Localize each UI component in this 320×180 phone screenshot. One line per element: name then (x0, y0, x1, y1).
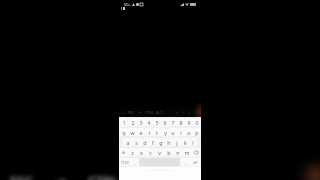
staticText: 2 (131, 119, 135, 126)
button[interactable]: → (193, 108, 199, 117)
staticText: — (121, 110, 125, 115)
staticText: CTRL (145, 110, 154, 115)
staticText: ← (176, 111, 180, 115)
button[interactable]: k (181, 138, 189, 146)
button[interactable]: f (149, 138, 157, 146)
staticText: ALT (156, 110, 163, 115)
button[interactable]: m (182, 148, 191, 156)
staticText: 8 (179, 119, 183, 126)
staticText: b (167, 149, 171, 156)
button[interactable]: 4 (145, 118, 153, 126)
staticText: 6 (163, 119, 167, 126)
staticText: f (152, 139, 154, 146)
button[interactable]: v (155, 148, 164, 156)
staticText: ?123 (121, 160, 129, 165)
button[interactable]: h (165, 138, 173, 146)
button[interactable]: CTRL (144, 108, 155, 117)
button[interactable]: z (128, 148, 137, 156)
button[interactable]: w (128, 128, 137, 136)
staticText: j (176, 139, 178, 146)
staticText: ↑ (182, 111, 186, 115)
staticText: ⇥ (138, 111, 142, 115)
button[interactable]: , (130, 158, 139, 166)
staticText: , (134, 159, 136, 166)
button[interactable]: 6 (161, 118, 169, 126)
button[interactable]: ← (175, 108, 181, 117)
staticText: a (126, 139, 130, 146)
staticText: 9 (187, 119, 191, 126)
staticText: o (187, 129, 191, 136)
staticText: 5 (155, 119, 159, 126)
button[interactable]: u (169, 128, 177, 136)
button[interactable]: ↓ (187, 108, 193, 117)
staticText: m (184, 149, 190, 156)
button[interactable]: 2 (128, 118, 137, 126)
staticText: CTRL (88, 172, 119, 180)
button[interactable]: Enter (189, 158, 201, 166)
button[interactable]: Backspace (191, 148, 201, 156)
button[interactable]: x (137, 148, 146, 156)
staticText: e (139, 129, 143, 136)
staticText: → (194, 111, 198, 115)
button[interactable]: b (164, 148, 173, 156)
button[interactable]: 0 (193, 118, 201, 126)
button[interactable]: t (153, 128, 161, 136)
button[interactable]: . (180, 158, 189, 166)
staticText: x (140, 149, 143, 156)
button[interactable]: ALT (155, 108, 164, 117)
staticText: ESC (128, 110, 135, 115)
button[interactable]: a (123, 138, 132, 146)
button[interactable]: o (185, 128, 193, 136)
button[interactable]: Shift (119, 148, 128, 156)
button[interactable]: ⇥ (136, 108, 144, 117)
staticText: 50+ (124, 2, 131, 7)
staticText: ↓ (188, 111, 192, 115)
staticText: k (184, 139, 187, 146)
staticText: . (184, 159, 186, 166)
button[interactable]: s (132, 138, 141, 146)
button[interactable]: c (146, 148, 155, 156)
button[interactable]: 5 (153, 118, 161, 126)
button[interactable]: ?123 (119, 158, 130, 166)
button[interactable]: r (145, 128, 153, 136)
button[interactable]: ↑ (181, 108, 187, 117)
button[interactable]: l (189, 138, 197, 146)
staticText: 7 (171, 119, 175, 126)
staticText: ⇥ (55, 174, 66, 180)
button[interactable]: 7 (169, 118, 177, 126)
staticText: 3 (139, 119, 143, 126)
staticText: z (131, 149, 134, 156)
button[interactable]: 9 (185, 118, 193, 126)
staticText: c (149, 149, 152, 156)
button[interactable]: g (157, 138, 165, 146)
staticText: 4 (147, 119, 151, 126)
button[interactable]: 1 (119, 118, 128, 126)
button[interactable]: y (161, 128, 169, 136)
staticText: g (159, 139, 163, 146)
button[interactable]: n (173, 148, 182, 156)
staticText: 0 (195, 119, 199, 126)
button[interactable]: — (120, 108, 126, 117)
button[interactable]: j (173, 138, 181, 146)
button[interactable]: i (177, 128, 185, 136)
button[interactable]: q (119, 128, 128, 136)
staticText: h (167, 139, 171, 146)
button[interactable]: 3 (137, 118, 145, 126)
staticText: q (122, 129, 126, 136)
staticText: t (156, 129, 158, 136)
staticText: 1 (122, 119, 126, 126)
button[interactable]: d (141, 138, 149, 146)
button[interactable]: ESC (126, 108, 136, 117)
button[interactable]: e (137, 128, 145, 136)
button[interactable]: 8 (177, 118, 185, 126)
button[interactable]: p (193, 128, 201, 136)
staticText: u (171, 129, 175, 136)
staticText: s (135, 139, 138, 146)
staticText: v (158, 149, 161, 156)
staticText: i (180, 129, 182, 136)
staticText: n (176, 149, 180, 156)
staticText: d (143, 139, 147, 146)
staticText: r (148, 129, 151, 136)
